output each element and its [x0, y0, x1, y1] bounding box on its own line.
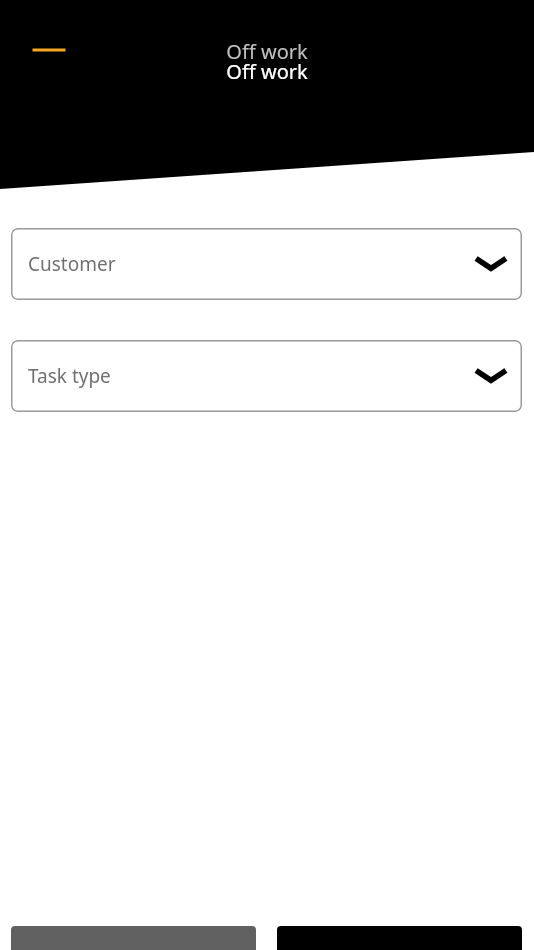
- staticText: Task type: [28, 363, 111, 389]
- button[interactable]: Task type: [11, 340, 522, 412]
- button[interactable]: CONFIRM: [277, 926, 522, 950]
- button[interactable]: Customer: [11, 228, 522, 300]
- staticText: Customer: [28, 251, 116, 277]
- staticText: Off work: [0, 38, 534, 65]
- button[interactable]: CANCEL: [11, 926, 256, 950]
- button[interactable]: Menu: [22, 30, 76, 70]
- staticText: Off work: [0, 58, 534, 85]
